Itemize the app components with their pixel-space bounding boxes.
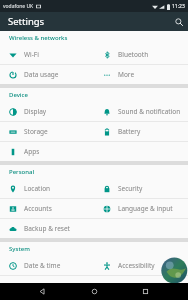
button[interactable]: Storage [0, 122, 94, 141]
button[interactable]: Language & input [94, 199, 188, 218]
staticText: Storage [24, 127, 48, 136]
staticText: Backup & reset [24, 224, 70, 233]
button[interactable]: Security [94, 179, 188, 198]
button[interactable]: Recent apps [137, 283, 154, 300]
staticText: Wi-Fi [24, 50, 39, 59]
button[interactable]: Back [34, 283, 51, 300]
button[interactable]: More [94, 65, 188, 84]
button[interactable]: Backup & reset [0, 219, 94, 238]
staticText: Accounts [24, 204, 52, 213]
staticText: vodafone UK [3, 3, 34, 10]
staticText: Language & input [118, 204, 173, 213]
button[interactable]: Battery [94, 122, 188, 141]
staticText: Device [9, 91, 28, 99]
staticText: More [118, 70, 135, 79]
button[interactable]: Bluetooth [94, 45, 188, 64]
staticText: Battery [118, 127, 141, 136]
staticText: Personal [9, 168, 35, 176]
staticText: Security [118, 184, 143, 193]
button[interactable]: Data usage [0, 65, 94, 84]
button[interactable]: Home [86, 283, 103, 300]
staticText: 11:23 [172, 3, 185, 10]
button[interactable]: Accessibility [94, 256, 188, 275]
staticText: Apps [24, 147, 40, 156]
staticText: Display [24, 107, 47, 116]
staticText: Date & time [24, 261, 61, 270]
button[interactable]: Search [169, 12, 188, 31]
staticText: Accessibility [118, 261, 155, 270]
staticText: Bluetooth [118, 50, 149, 59]
staticText: Data usage [24, 70, 59, 79]
staticText: Sound & notification [118, 107, 181, 116]
button[interactable]: Sound & notification [94, 102, 188, 121]
button[interactable]: Wi-Fi [0, 45, 94, 64]
button[interactable]: Accounts [0, 199, 94, 218]
button[interactable]: Date & time [0, 256, 94, 275]
button[interactable]: Display [0, 102, 94, 121]
button[interactable]: Apps [0, 142, 94, 161]
staticText: Settings [8, 15, 45, 28]
staticText: System [9, 245, 30, 253]
staticText: Wireless & networks [9, 34, 68, 42]
button[interactable]: Location [0, 179, 94, 198]
staticText: Location [24, 184, 51, 193]
